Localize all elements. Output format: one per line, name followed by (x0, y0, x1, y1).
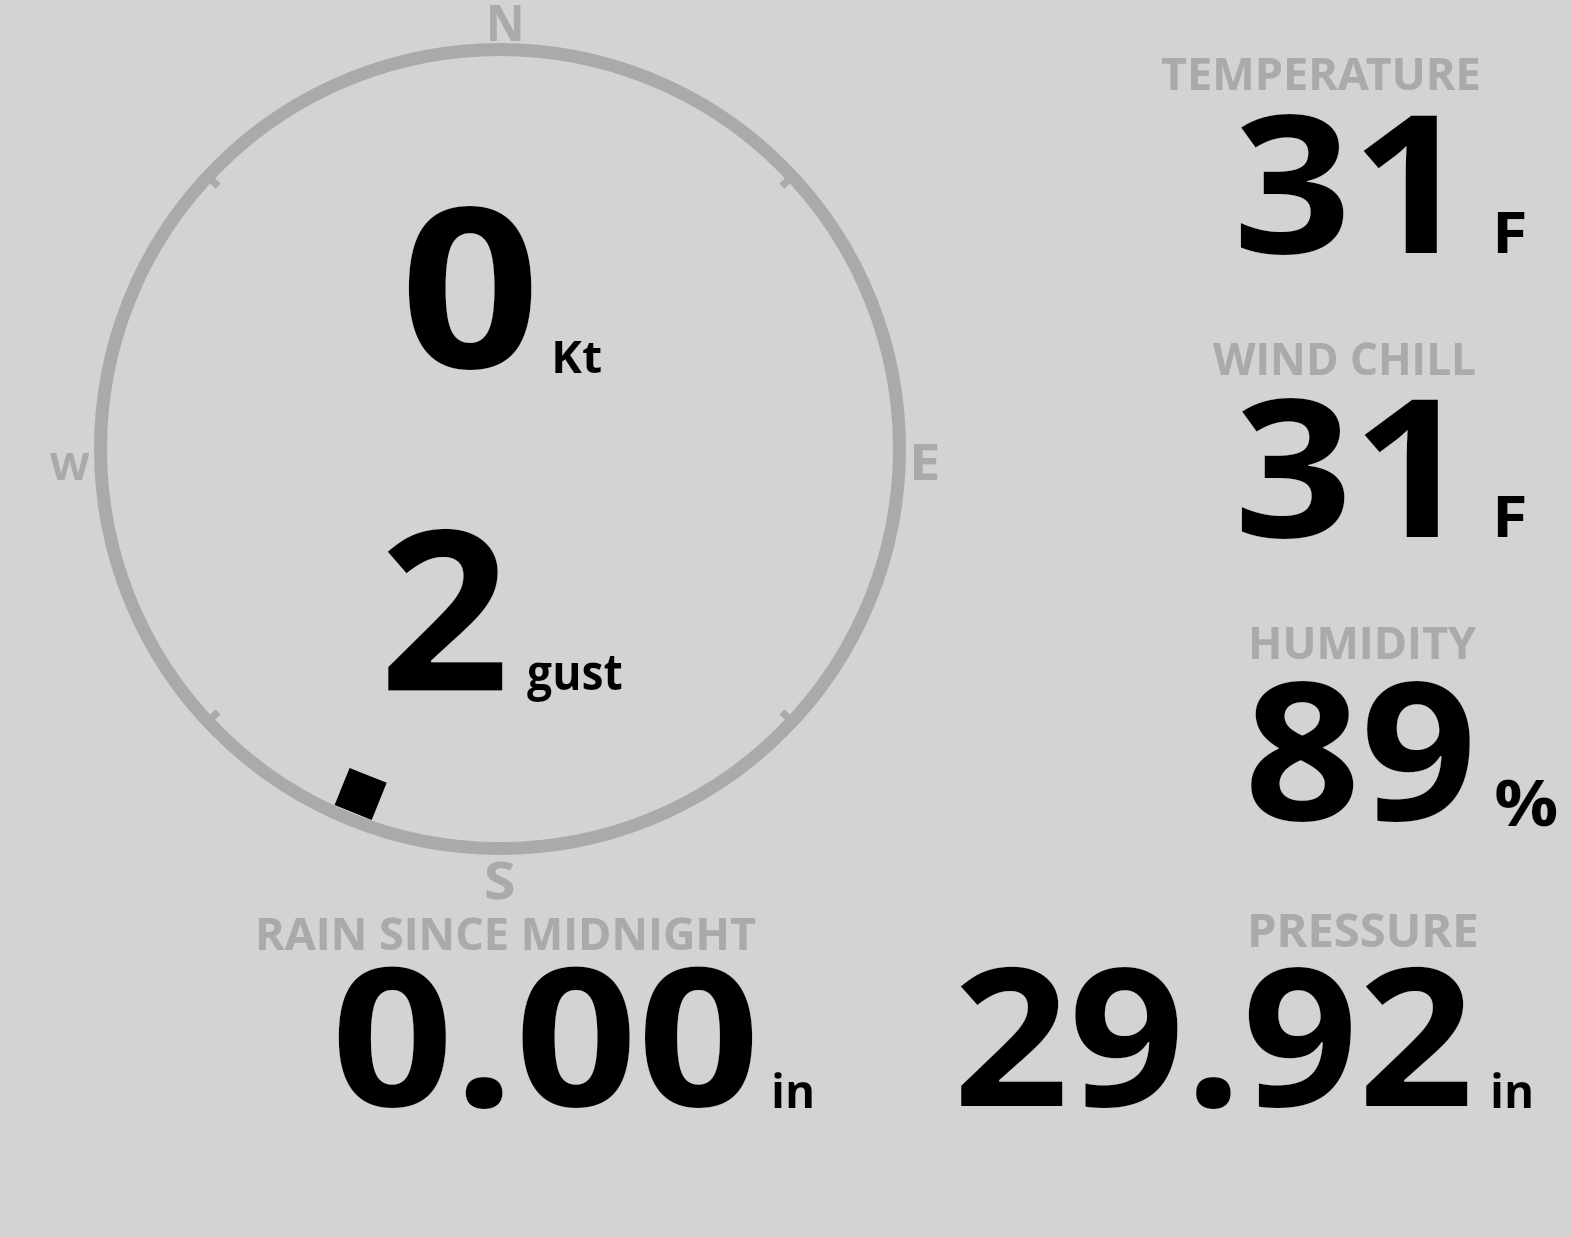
staticText: N (486, 0, 525, 56)
staticText: 0 (400, 131, 540, 421)
staticText: RAIN SINCE MIDNIGHT (255, 902, 756, 963)
button[interactable]: 0 (330, 120, 670, 410)
staticText: HUMIDITY (1248, 611, 1477, 672)
staticText: F (1492, 475, 1528, 554)
button[interactable]: WIND CHILL (1140, 320, 1560, 565)
staticText: 31 (1233, 48, 1471, 293)
staticText: 29.92 (953, 901, 1475, 1141)
staticText: F (1492, 191, 1528, 270)
button[interactable]: HUMIDITY (1140, 605, 1560, 850)
staticText: 89 (1244, 615, 1478, 860)
staticText: WIND CHILL (1213, 328, 1476, 388)
button[interactable]: PRESSURE (930, 890, 1555, 1130)
staticText: PRESSURE (1247, 897, 1479, 961)
staticText: in (771, 1059, 816, 1122)
staticText: E (909, 425, 941, 494)
staticText: % (1494, 757, 1559, 846)
staticText: 2 (379, 452, 510, 742)
button[interactable]: Wind direction compass (94, 43, 906, 855)
button[interactable]: 2 (330, 440, 670, 730)
staticText: gust (527, 637, 623, 705)
staticText: W (50, 440, 90, 490)
button[interactable]: TEMPERATURE (1140, 40, 1560, 285)
staticText: S (484, 843, 516, 914)
staticText: Kt (551, 325, 603, 386)
staticText: in (1490, 1059, 1535, 1122)
staticText: 31 (1234, 332, 1472, 577)
staticText: 0.00 (331, 901, 760, 1136)
staticText: TEMPERATURE (1161, 42, 1481, 103)
button[interactable]: RAIN SINCE MIDNIGHT (240, 895, 840, 1130)
